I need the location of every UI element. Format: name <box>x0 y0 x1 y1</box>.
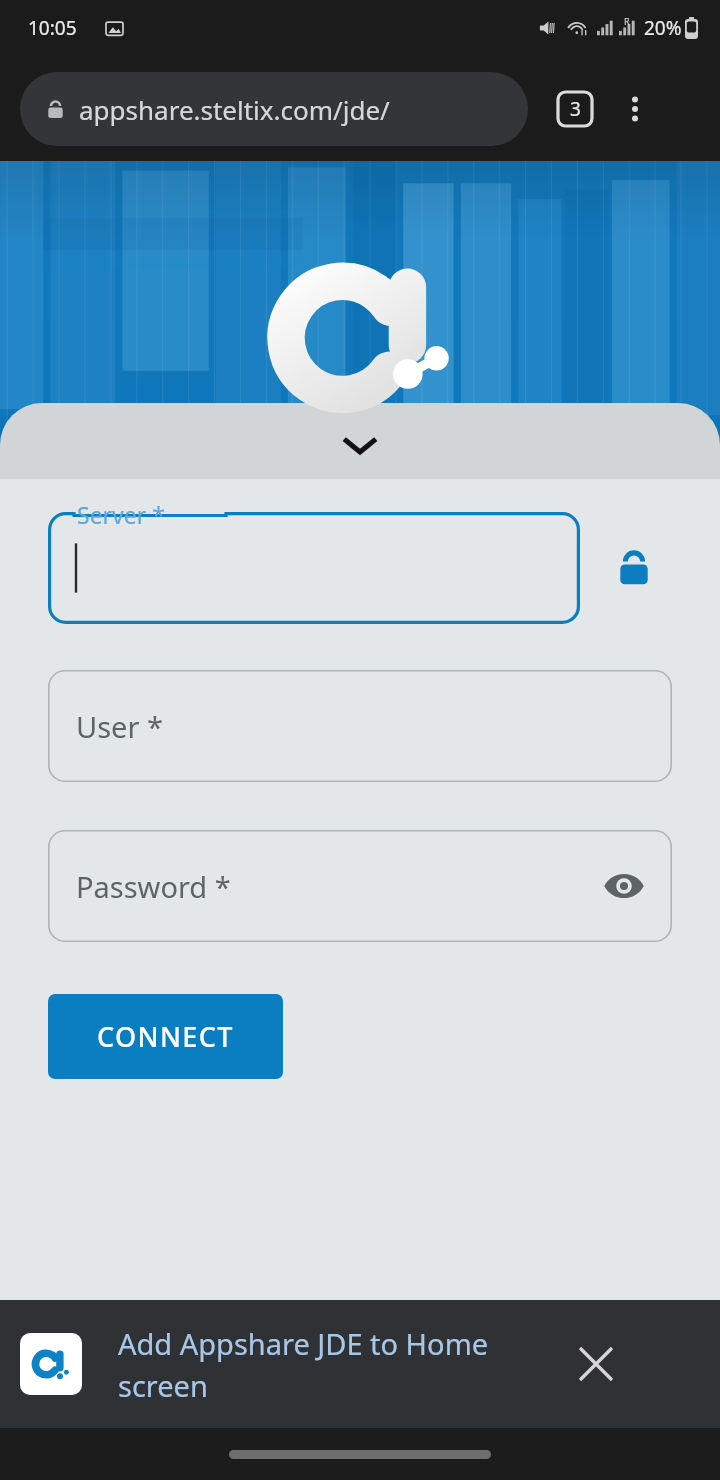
button[interactable]: Tabs <box>548 82 602 136</box>
button[interactable]: Server * <box>48 512 580 624</box>
staticText: appshare.steltix.com/jde/ <box>79 92 390 127</box>
button[interactable]: Expand <box>332 417 388 473</box>
button[interactable]: CONNECT <box>48 994 283 1079</box>
staticText: R <box>624 15 630 27</box>
staticText: Add Appshare JDE to Home screen <box>118 1324 558 1405</box>
staticText: User * <box>76 707 163 746</box>
staticText: Server * <box>77 499 165 530</box>
button[interactable]: More options <box>608 82 662 136</box>
button[interactable]: Dismiss <box>564 1332 628 1396</box>
staticText: 20% <box>644 15 682 41</box>
staticText: 10:05 <box>28 15 77 41</box>
button[interactable]: Password * <box>48 830 672 942</box>
button[interactable]: Show password <box>596 858 652 914</box>
button[interactable]: appshare.steltix.com/jde/ <box>20 72 528 146</box>
button[interactable]: Add Appshare JDE to Home screen <box>0 1300 720 1428</box>
staticText: CONNECT <box>97 1018 234 1055</box>
button[interactable]: User * <box>48 670 672 782</box>
staticText: 3 <box>570 96 581 122</box>
button[interactable]: Secure connection <box>606 540 662 596</box>
staticText: Password * <box>76 867 231 906</box>
